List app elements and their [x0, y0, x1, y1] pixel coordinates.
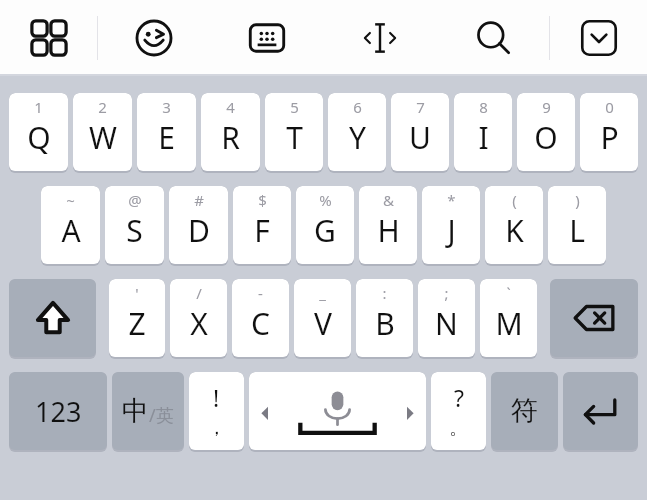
staticText: 6 [353, 97, 362, 117]
button[interactable]: Emoji [98, 0, 210, 76]
staticText: Y [349, 117, 366, 158]
button[interactable]: Y [328, 93, 386, 171]
button[interactable]: Enter [563, 372, 638, 450]
button[interactable]: W [73, 93, 132, 171]
button[interactable]: F [233, 186, 291, 264]
button[interactable]: M [480, 279, 537, 357]
staticText: % [319, 190, 332, 210]
button[interactable]: N [418, 279, 475, 357]
staticText: $ [258, 190, 267, 210]
staticText: U [409, 117, 431, 158]
staticText: M [495, 303, 523, 344]
button[interactable]: R [201, 93, 260, 171]
button[interactable]: P [580, 93, 638, 171]
staticText: E [158, 117, 175, 158]
button[interactable]: S [105, 186, 164, 264]
button[interactable]: Chinese English toggle [112, 372, 184, 450]
button[interactable]: Shift [9, 279, 96, 357]
staticText: C [251, 303, 270, 344]
staticText: I [478, 117, 489, 158]
button[interactable]: D [169, 186, 228, 264]
staticText: ! [213, 382, 220, 413]
staticText: 0 [605, 97, 614, 117]
staticText: O [534, 117, 558, 158]
staticText: - [258, 283, 263, 303]
staticText: 中 [122, 394, 149, 428]
staticText: B [375, 303, 395, 344]
staticText: & [383, 190, 394, 210]
staticText: Q [27, 117, 51, 158]
button[interactable]: Symbols [491, 372, 558, 450]
button[interactable]: U [391, 93, 449, 171]
staticText: S [126, 210, 143, 251]
staticText: J [447, 210, 456, 251]
button[interactable]: 123 [9, 372, 107, 450]
button[interactable]: Move cursor [323, 0, 436, 76]
button[interactable]: G [296, 186, 354, 264]
button[interactable]: Space [249, 372, 426, 450]
staticText: @ [128, 190, 142, 210]
button[interactable]: L [548, 186, 606, 264]
button[interactable]: Exclamation and comma [189, 372, 244, 450]
button[interactable]: B [356, 279, 413, 357]
staticText: /英 [149, 403, 174, 428]
staticText: ; [444, 283, 449, 303]
staticText: * [447, 190, 456, 210]
button[interactable]: O [517, 93, 575, 171]
staticText: D [188, 210, 210, 251]
button[interactable]: Question mark and period [431, 372, 486, 450]
button[interactable]: C [232, 279, 289, 357]
staticText: 9 [542, 97, 551, 117]
staticText: 123 [35, 393, 82, 430]
staticText: 。 [449, 416, 468, 440]
staticText: H [377, 210, 400, 251]
button[interactable]: E [137, 93, 196, 171]
button[interactable]: Apps [0, 0, 97, 76]
staticText: ` [506, 283, 511, 303]
button[interactable]: Q [9, 93, 68, 171]
staticText: G [314, 210, 336, 251]
button[interactable]: Search [436, 0, 549, 76]
staticText: X [190, 303, 208, 344]
staticText: Z [128, 303, 146, 344]
staticText: 5 [290, 97, 299, 117]
staticText: N [435, 303, 458, 344]
button[interactable]: Hide keyboard [550, 0, 647, 76]
staticText: 2 [98, 97, 107, 117]
staticText: 4 [226, 97, 235, 117]
staticText: K [505, 210, 524, 251]
staticText: _ [319, 283, 326, 303]
staticText: 7 [416, 97, 425, 117]
button[interactable]: V [294, 279, 351, 357]
staticText: ( [512, 190, 517, 210]
button[interactable]: H [359, 186, 417, 264]
staticText: # [194, 190, 204, 210]
staticText: A [61, 210, 81, 251]
button[interactable]: Backspace [550, 279, 638, 357]
button[interactable]: X [170, 279, 227, 357]
button[interactable]: K [485, 186, 543, 264]
staticText: P [600, 117, 619, 158]
staticText: F [254, 210, 270, 251]
staticText: R [221, 117, 240, 158]
staticText: : [382, 283, 387, 303]
button[interactable]: T [265, 93, 323, 171]
staticText: ~ [66, 190, 75, 210]
staticText: ， [207, 416, 226, 440]
staticText: ' [135, 283, 139, 303]
staticText: V [314, 303, 332, 344]
button[interactable]: Keyboard layout [210, 0, 323, 76]
staticText: ) [575, 190, 580, 210]
staticText: 符 [511, 394, 538, 428]
staticText: 1 [34, 97, 43, 117]
button[interactable]: Z [109, 279, 165, 357]
button[interactable]: J [422, 186, 480, 264]
staticText: 3 [162, 97, 171, 117]
button[interactable]: A [41, 186, 100, 264]
button[interactable]: I [454, 93, 512, 171]
staticText: L [569, 210, 585, 251]
staticText: T [286, 117, 303, 158]
staticText: 8 [479, 97, 488, 117]
staticText: / [196, 283, 202, 303]
staticText: ? [454, 382, 464, 413]
